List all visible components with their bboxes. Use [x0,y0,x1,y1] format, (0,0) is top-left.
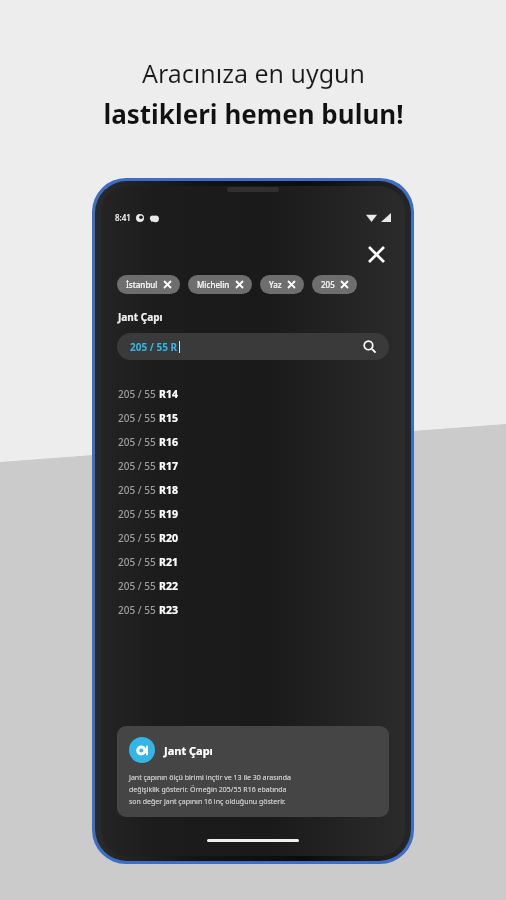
button[interactable]: 205 / 55 [118,430,405,454]
staticText: 205 / 55 [118,531,159,545]
staticText: 8:41 [115,212,131,223]
staticText: Michelin [197,279,230,290]
staticText: 205 [321,279,335,290]
button[interactable]: 205 / 55 [118,526,405,550]
staticText: 205 / 55 [118,603,159,617]
staticText: 205 / 55 R [130,340,178,354]
staticText: 205 / 55 [118,435,159,449]
button[interactable]: 205 / 55 [118,502,405,526]
button[interactable]: Yaz [260,275,304,294]
staticText: R18 [159,483,178,497]
staticText: 205 / 55 [118,507,159,521]
button[interactable]: 205 / 55 [118,598,405,622]
button[interactable]: 205 / 55 [118,454,405,478]
button[interactable]: 205 / 55 [118,574,405,598]
staticText: Yaz [269,279,282,290]
staticText: R22 [159,579,178,593]
staticText: 205 / 55 [118,579,159,593]
staticText: Aracınıza en uygun [142,56,365,90]
button[interactable]: Jant Çapı [117,726,389,817]
staticText: Jant Çapı [164,743,213,758]
staticText: 205 / 55 [118,411,159,425]
button[interactable]: 205 / 55 [118,406,405,430]
staticText: İstanbul [126,279,158,290]
button[interactable]: Michelin [188,275,252,294]
staticText: 205 / 55 [118,483,159,497]
staticText: R21 [159,555,178,569]
other: Ara [363,340,376,353]
button[interactable]: İstanbul [117,275,180,294]
staticText: 205 / 55 [118,387,159,401]
staticText: Jant çapının ölçü birimi inçtir ve 13 il… [129,773,291,806]
staticText: R23 [159,603,178,617]
staticText: R16 [159,435,178,449]
staticText: R17 [159,459,178,473]
staticText: R19 [159,507,178,521]
staticText: R15 [159,411,178,425]
button[interactable]: 205 / 55 R [117,333,389,360]
button[interactable]: 205 / 55 [118,382,405,406]
staticText: 205 / 55 [118,459,159,473]
button[interactable]: 205 / 55 [118,478,405,502]
staticText: R20 [159,531,178,545]
button[interactable]: 205 / 55 [118,550,405,574]
staticText: Jant Çapı [118,310,163,324]
staticText: 205 / 55 [118,555,159,569]
button[interactable]: Kapat [363,241,389,267]
staticText: lastikleri hemen bulun! [103,96,404,131]
staticText: R14 [159,387,178,401]
button[interactable]: 205 [312,275,357,294]
